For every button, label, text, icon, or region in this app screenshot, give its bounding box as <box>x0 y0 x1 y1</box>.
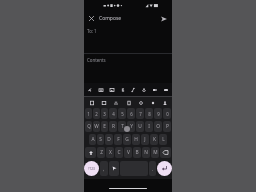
button[interactable]: I <box>145 121 153 132</box>
staticText: N <box>144 149 148 156</box>
staticText: 4 <box>112 111 115 117</box>
button[interactable]: Profile <box>160 98 169 107</box>
staticText: , <box>103 166 105 172</box>
button[interactable]: Image <box>108 86 116 94</box>
button[interactable]: To: 1 <box>84 24 172 53</box>
button[interactable]: Z <box>97 147 105 158</box>
button[interactable]: 6 <box>127 108 135 119</box>
staticText: ?123 <box>88 167 95 171</box>
button[interactable]: Comma <box>100 161 108 176</box>
button[interactable]: Draw <box>162 86 170 94</box>
button[interactable]: Shift <box>85 147 96 158</box>
button[interactable]: D <box>105 134 113 145</box>
staticText: A <box>91 136 95 143</box>
button[interactable]: O <box>154 121 162 132</box>
button[interactable]: E <box>101 121 108 132</box>
button[interactable]: J <box>141 134 149 145</box>
button[interactable]: 3 <box>101 108 108 119</box>
staticText: . <box>152 166 154 172</box>
staticText: T <box>121 123 124 130</box>
button[interactable]: Attach <box>86 86 94 94</box>
staticText: Z <box>100 149 103 156</box>
staticText: M <box>153 149 158 156</box>
staticText: G <box>125 136 129 143</box>
button[interactable]: Send <box>158 13 169 24</box>
button[interactable]: Q <box>85 121 92 132</box>
staticText: S <box>99 136 102 143</box>
button[interactable]: Translate <box>99 98 108 107</box>
button[interactable]: M <box>151 147 159 158</box>
staticText: R <box>112 123 115 130</box>
button[interactable]: Italic <box>129 86 137 94</box>
staticText: H <box>134 136 138 143</box>
button[interactable]: K <box>150 134 158 145</box>
button[interactable]: R <box>109 121 117 132</box>
staticText: V <box>127 149 130 156</box>
staticText: 3 <box>103 111 106 117</box>
button[interactable]: Emoji <box>109 161 119 176</box>
button[interactable]: 9 <box>154 108 162 119</box>
staticText: W <box>94 123 99 130</box>
staticText: F <box>117 136 120 143</box>
button[interactable]: Y <box>127 121 135 132</box>
button[interactable]: H <box>132 134 140 145</box>
staticText: 6 <box>130 111 133 117</box>
staticText: 9 <box>157 111 160 117</box>
button[interactable]: Symbols <box>84 161 99 176</box>
staticText: J <box>144 136 146 143</box>
button[interactable]: Delete <box>124 98 133 107</box>
staticText: C <box>117 149 121 156</box>
staticText: L <box>162 136 165 143</box>
button[interactable]: Period <box>149 161 156 176</box>
button[interactable]: V <box>124 147 132 158</box>
button[interactable]: 4 <box>109 108 117 119</box>
staticText: I <box>148 123 150 130</box>
button[interactable]: T <box>118 121 126 132</box>
button[interactable]: Contents <box>84 54 172 83</box>
staticText: U <box>138 123 142 130</box>
button[interactable]: Settings <box>136 98 145 107</box>
button[interactable]: 7 <box>136 108 144 119</box>
button[interactable]: C <box>115 147 123 158</box>
button[interactable]: U <box>136 121 144 132</box>
staticText: 0 <box>166 111 169 117</box>
staticText: Compose <box>99 15 122 22</box>
staticText: Y <box>130 123 133 130</box>
staticText: B <box>135 149 139 156</box>
button[interactable]: L <box>159 134 167 145</box>
button[interactable]: 5 <box>118 108 126 119</box>
staticText: P <box>166 123 169 130</box>
button[interactable]: 2 <box>93 108 100 119</box>
staticText: 8 <box>148 111 151 117</box>
button[interactable]: P <box>163 121 171 132</box>
button[interactable]: 8 <box>145 108 153 119</box>
button[interactable]: X <box>106 147 114 158</box>
button[interactable]: Bold <box>119 86 127 94</box>
button[interactable]: Emoji <box>111 98 120 107</box>
button[interactable]: Clipboard <box>87 98 96 107</box>
button[interactable]: G <box>123 134 131 145</box>
staticText: 2 <box>95 111 98 117</box>
button[interactable]: Close <box>86 13 97 24</box>
button[interactable]: B <box>133 147 141 158</box>
staticText: D <box>107 136 111 143</box>
button[interactable]: Theme <box>148 98 157 107</box>
button[interactable]: Enter <box>157 161 172 176</box>
staticText: K <box>153 136 156 143</box>
button[interactable]: F <box>114 134 122 145</box>
staticText: 1 <box>87 111 90 117</box>
button[interactable]: Camera <box>97 86 105 94</box>
staticText: Contents <box>87 57 106 63</box>
button[interactable]: Link <box>140 86 148 94</box>
button[interactable]: A <box>89 134 96 145</box>
button[interactable]: Backspace <box>160 147 171 158</box>
button[interactable]: Video <box>151 86 159 94</box>
button[interactable]: N <box>142 147 150 158</box>
staticText: E <box>103 123 106 130</box>
button[interactable]: W <box>93 121 100 132</box>
button[interactable]: 0 <box>163 108 171 119</box>
button[interactable]: 1 <box>85 108 92 119</box>
button[interactable]: S <box>97 134 104 145</box>
staticText: Q <box>87 123 91 130</box>
